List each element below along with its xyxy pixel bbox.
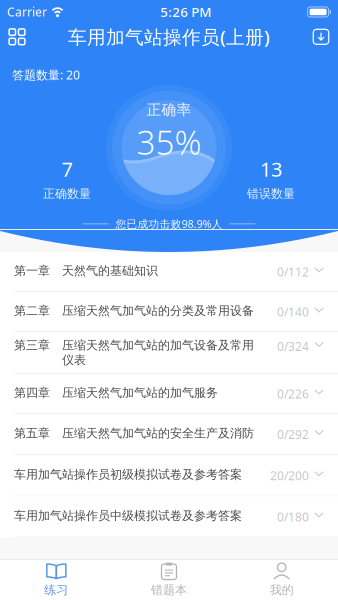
staticText: 车用加气站操作员(上册)	[68, 24, 270, 49]
staticText: 0/324	[277, 338, 309, 354]
staticText: 0/112	[277, 264, 309, 280]
staticText: 车用加气站操作员初级模拟试卷及参考答案	[14, 467, 242, 482]
staticText: 5:26 PM	[160, 3, 211, 21]
staticText: 正确率	[146, 101, 191, 119]
staticText: 错误数量	[247, 186, 295, 201]
button[interactable]: Categories	[1, 23, 33, 51]
staticText: 车用加气站操作员中级模拟试卷及参考答案	[14, 508, 242, 523]
staticText: 第二章	[14, 303, 50, 318]
staticText: 7	[61, 156, 72, 182]
staticText: 压缩天然气加气站的分类及常用设备	[62, 303, 254, 318]
staticText: 第三章	[14, 338, 50, 353]
button[interactable]: 车用加气站操作员中级模拟试卷及参考答案	[0, 496, 338, 537]
staticText: 压缩天然气加气站的安全生产及消防	[62, 426, 254, 441]
button[interactable]: 错题本	[113, 557, 225, 600]
staticText: 第一章	[14, 263, 50, 278]
staticText: 您已成功击败98.9%人	[115, 217, 222, 231]
button[interactable]: 第五章	[0, 414, 338, 455]
staticText: 0/226	[277, 386, 309, 402]
button[interactable]: 第三章	[0, 332, 338, 374]
staticText: 0/292	[277, 426, 309, 442]
button[interactable]: 车用加气站操作员初级模拟试卷及参考答案	[0, 455, 338, 496]
staticText: 天然气的基础知识	[62, 263, 158, 278]
staticText: 第五章	[14, 426, 50, 441]
button[interactable]: Download	[305, 23, 337, 51]
staticText: 答题数量: 20	[12, 67, 80, 83]
staticText: 35%	[136, 120, 201, 164]
staticText: 我的	[270, 582, 294, 597]
staticText: 压缩天然气加气站的加气设备及常用仪表	[62, 338, 254, 367]
staticText: 错题本	[151, 582, 187, 597]
staticText: 正确数量	[43, 186, 91, 201]
button[interactable]: 第二章	[0, 292, 338, 332]
staticText: 第四章	[14, 385, 50, 400]
button[interactable]: 第四章	[0, 374, 338, 414]
staticText: 20/200	[270, 468, 309, 483]
button[interactable]: 我的	[225, 557, 338, 600]
staticText: 练习	[44, 582, 68, 597]
staticText: 0/140	[277, 304, 309, 320]
button[interactable]: 练习	[0, 557, 113, 600]
staticText: 13	[260, 156, 282, 182]
button[interactable]: 第一章	[0, 252, 338, 292]
staticText: 压缩天然气加气站的加气服务	[62, 385, 218, 400]
staticText: Carrier	[7, 4, 47, 20]
staticText: 0/180	[277, 509, 309, 525]
